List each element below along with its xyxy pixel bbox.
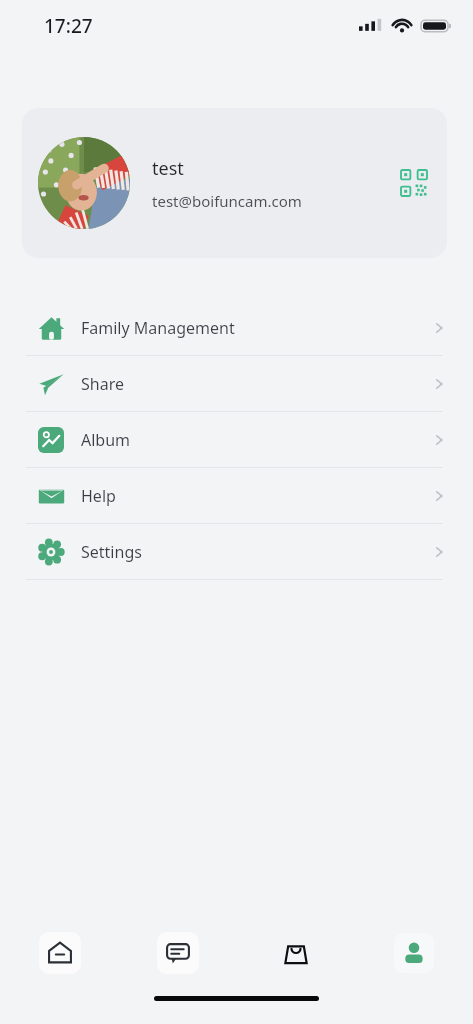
staticText: Family Management	[81, 317, 431, 339]
button[interactable]: Profile	[355, 915, 473, 991]
staticText: test@boifuncam.com	[152, 191, 302, 211]
staticText: test	[152, 156, 184, 181]
button[interactable]: Family Management	[0, 300, 473, 355]
button[interactable]: Settings	[0, 524, 473, 579]
staticText: Album	[81, 429, 431, 451]
button[interactable]: QR code	[397, 166, 431, 200]
button[interactable]: Album	[0, 412, 473, 467]
staticText: 17:27	[44, 13, 93, 39]
staticText: Help	[81, 485, 431, 507]
button[interactable]: Shop	[237, 915, 355, 991]
button[interactable]: Messages	[119, 915, 237, 991]
button[interactable]: Share	[0, 356, 473, 411]
button[interactable]: Home	[0, 915, 119, 991]
button[interactable]: test	[22, 108, 447, 258]
staticText: Share	[81, 373, 431, 395]
staticText: Settings	[81, 541, 431, 563]
button[interactable]: Help	[0, 468, 473, 523]
